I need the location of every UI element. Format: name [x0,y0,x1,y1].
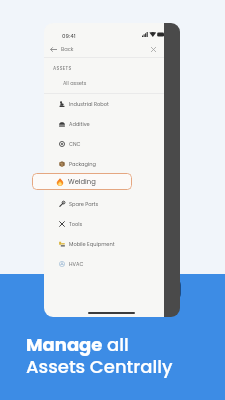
staticText: Additive [69,121,90,128]
staticText: ASSETS [53,65,72,71]
staticText: Manage all Assets Centrally [26,332,173,380]
button[interactable] [44,174,164,194]
button[interactable]: Welding [32,173,132,190]
staticText: Packaging [69,161,96,168]
button[interactable]: Spare Parts [44,194,164,214]
button[interactable]: Industrial Robot [44,94,164,114]
staticText: Industrial Robot [69,101,109,108]
staticText: Tools [69,221,83,228]
button[interactable]: Back [44,41,164,57]
button[interactable]: All assets [44,78,164,88]
button[interactable]: Mobile Equipment [44,234,164,254]
button[interactable]: HVAC [44,254,164,274]
button[interactable]: CNC [44,134,164,154]
staticText: Welding [68,177,96,187]
staticText: HVAC [69,261,84,268]
staticText: Back [61,46,74,53]
staticText: CNC [69,141,81,148]
staticText: All assets [63,80,87,87]
button[interactable]: Additive [44,114,164,134]
staticText: Mobile Equipment [69,241,115,248]
staticText: Spare Parts [69,201,99,208]
button[interactable]: Tools [44,214,164,234]
staticText: 09:41 [62,32,76,40]
button[interactable]: Packaging [44,154,164,174]
button[interactable]: Close [147,43,160,56]
